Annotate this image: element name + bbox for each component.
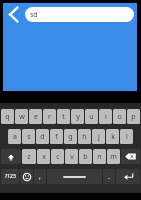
staticText: c <box>56 152 60 162</box>
button[interactable]: n <box>93 149 106 164</box>
staticText: h <box>82 132 87 142</box>
staticText: v <box>70 152 74 162</box>
staticText: a <box>13 132 17 142</box>
button[interactable]: , <box>34 169 46 184</box>
staticText: x <box>42 152 46 162</box>
staticText: o <box>117 112 122 122</box>
staticText: g <box>68 132 73 142</box>
staticText: , <box>39 173 41 181</box>
button[interactable]: . <box>103 169 115 184</box>
button[interactable]: d <box>36 129 49 144</box>
staticText: f <box>55 132 58 142</box>
button[interactable]: l <box>120 129 133 144</box>
button[interactable]: Space <box>47 169 102 184</box>
button[interactable]: Back <box>3 3 23 25</box>
button[interactable]: i <box>99 109 112 124</box>
button[interactable]: Enter <box>116 169 140 184</box>
staticText: p <box>131 112 136 122</box>
staticText: d <box>40 132 45 142</box>
staticText: sd <box>30 10 38 20</box>
button[interactable]: w <box>15 109 28 124</box>
button[interactable]: sd <box>25 7 134 22</box>
staticText: y <box>76 112 80 122</box>
button[interactable]: t <box>57 109 70 124</box>
staticText: . <box>108 173 110 181</box>
button[interactable]: y <box>71 109 84 124</box>
button[interactable]: z <box>22 149 36 164</box>
button[interactable]: x <box>37 149 50 164</box>
staticText: e <box>34 112 38 122</box>
staticText: u <box>89 112 94 122</box>
staticText: t <box>62 112 65 122</box>
button[interactable]: b <box>79 149 92 164</box>
staticText: n <box>97 152 102 162</box>
button[interactable]: r <box>43 109 56 124</box>
staticText: z <box>27 152 31 162</box>
button[interactable]: c <box>51 149 64 164</box>
staticText: w <box>19 112 25 122</box>
staticText: l <box>126 132 128 142</box>
staticText: j <box>98 132 100 142</box>
button[interactable]: o <box>113 109 126 124</box>
staticText: i <box>105 112 107 122</box>
staticText: s <box>27 132 31 142</box>
button[interactable]: f <box>50 129 63 144</box>
staticText: k <box>111 132 115 142</box>
button[interactable]: Backspace <box>121 149 140 164</box>
staticText: r <box>48 112 51 122</box>
button[interactable]: ?123 <box>1 169 19 184</box>
button[interactable]: Emoji <box>20 169 33 184</box>
button[interactable]: h <box>78 129 91 144</box>
staticText: m <box>110 152 117 162</box>
button[interactable]: v <box>65 149 78 164</box>
staticText: ?123 <box>5 173 16 180</box>
button[interactable]: u <box>85 109 98 124</box>
button[interactable]: s <box>22 129 35 144</box>
staticText: q <box>5 112 10 122</box>
button[interactable]: m <box>107 149 120 164</box>
button[interactable]: q <box>1 109 14 124</box>
button[interactable]: g <box>64 129 77 144</box>
button[interactable]: e <box>29 109 42 124</box>
button[interactable]: k <box>106 129 119 144</box>
button[interactable]: j <box>92 129 105 144</box>
button[interactable]: a <box>8 129 21 144</box>
button[interactable]: p <box>127 109 140 124</box>
staticText: b <box>83 152 88 162</box>
button[interactable]: Shift <box>1 149 21 164</box>
